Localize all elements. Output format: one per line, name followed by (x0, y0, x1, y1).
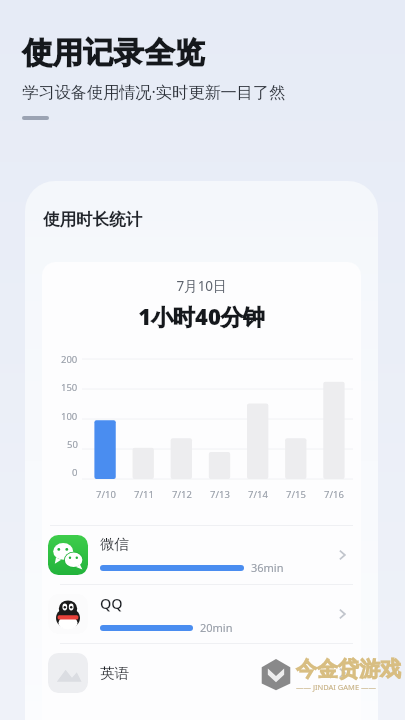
staticText: 150 (61, 381, 78, 394)
staticText: 7月10日 (42, 277, 361, 295)
staticText: 7/15 (286, 488, 306, 501)
staticText: 7/11 (134, 488, 154, 501)
staticText: 1小时40分钟 (42, 301, 361, 331)
staticText: 7/13 (210, 488, 230, 501)
staticText: 英语 (100, 664, 129, 682)
staticText: 100 (61, 410, 78, 423)
other: 查看英语 详情 (333, 664, 351, 682)
staticText: 今金贷游戏 (296, 656, 401, 682)
button[interactable]: QQ (42, 585, 361, 643)
staticText: 20min (200, 620, 233, 635)
staticText: 使用记录全览 (22, 34, 205, 72)
staticText: 50 (67, 438, 78, 451)
staticText: 使用时长统计 (43, 209, 142, 230)
staticText: 36min (251, 560, 284, 575)
staticText: 7/14 (248, 488, 268, 501)
staticText: 0 (72, 466, 78, 479)
staticText: 200 (61, 353, 78, 366)
staticText: 学习设备使用情况·实时更新一目了然 (22, 81, 286, 103)
staticText: 7/16 (324, 488, 344, 501)
other: 查看QQ 详情 (333, 605, 351, 623)
staticText: 微信 (100, 535, 129, 553)
staticText: —— JINDAI GAME —— (296, 682, 377, 692)
staticText: 7/10 (96, 488, 116, 501)
staticText: QQ (100, 593, 123, 613)
staticText: 7/12 (172, 488, 192, 501)
other: 查看微信 详情 (333, 546, 351, 564)
button[interactable]: 微信 (42, 526, 361, 584)
button[interactable]: 英语 (42, 644, 361, 702)
